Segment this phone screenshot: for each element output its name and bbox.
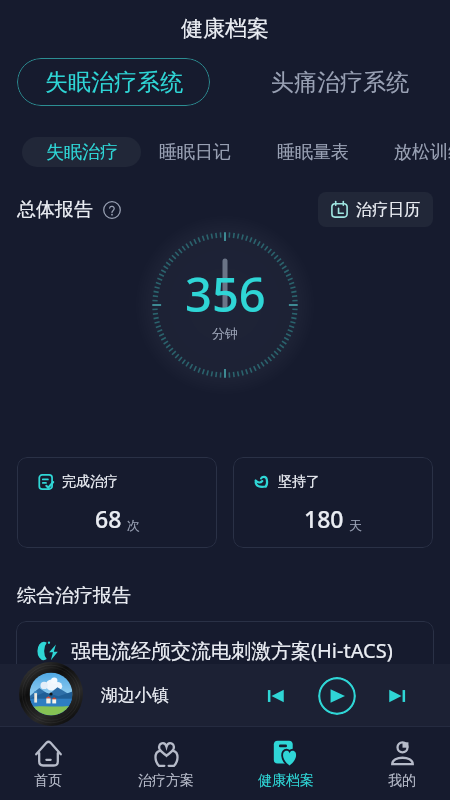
staticText: 综合治疗报告 [17, 584, 131, 608]
staticText: 我的 [388, 772, 416, 790]
button[interactable]: 睡眠量表 [277, 137, 349, 167]
staticText: 分钟 [212, 325, 238, 341]
staticText: 总体报告 [17, 198, 93, 222]
button[interactable]: 我的 [357, 726, 447, 800]
button[interactable]: 头痛治疗系统 [271, 58, 409, 106]
staticText: 失眠治疗系统 [45, 68, 183, 97]
button[interactable]: Previous track [259, 679, 292, 712]
staticText: 356 [185, 262, 266, 326]
staticText: 健康档案 [181, 15, 269, 43]
button[interactable]: Play [318, 677, 356, 715]
staticText: 强电流经颅交流电刺激方案(Hi-tACS) [71, 637, 393, 664]
button[interactable]: 首页 [3, 726, 93, 800]
staticText: 睡眠日记 [159, 141, 231, 164]
staticText: 次 [127, 517, 140, 533]
staticText: 治疗方案 [138, 772, 194, 790]
staticText: 湖边小镇 [101, 685, 169, 706]
staticText: 放松训练 [394, 141, 450, 164]
staticText: 天 [349, 517, 362, 533]
staticText: 治疗日历 [356, 200, 420, 220]
button[interactable]: 治疗日历 [318, 192, 433, 227]
staticText: 失眠治疗 [46, 141, 118, 164]
button[interactable]: 失眠治疗系统 [17, 58, 210, 106]
staticText: 睡眠量表 [277, 141, 349, 164]
button[interactable]: 坚持了 [233, 457, 433, 548]
button[interactable]: 失眠治疗 [22, 137, 141, 167]
button[interactable]: 完成治疗 [17, 457, 217, 548]
staticText: 首页 [34, 772, 62, 790]
staticText: 68 [95, 503, 122, 534]
button[interactable]: 健康档案 [241, 726, 331, 800]
button[interactable]: Next track [380, 679, 413, 712]
staticText: 180 [304, 503, 344, 534]
staticText: 头痛治疗系统 [271, 68, 409, 97]
button[interactable]: 强电流经颅交流电刺激方案(Hi-tACS) [16, 621, 434, 679]
staticText: 健康档案 [258, 772, 314, 790]
staticText: 完成治疗 [62, 473, 118, 491]
staticText: 坚持了 [278, 473, 320, 491]
button[interactable]: 睡眠日记 [159, 137, 231, 167]
button[interactable]: Album art [19, 662, 83, 726]
button[interactable]: 治疗方案 [121, 726, 211, 800]
button[interactable]: 放松训练 [394, 137, 450, 167]
